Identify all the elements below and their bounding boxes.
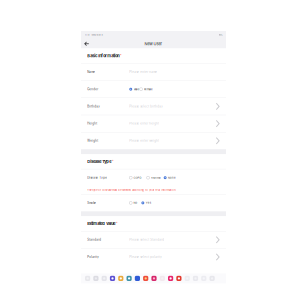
staticText: None — [168, 176, 176, 179]
button[interactable]: COPD — [129, 169, 147, 186]
staticText: Gender — [87, 87, 98, 91]
staticText: 11:01 Wed Nov 8 — [84, 34, 102, 36]
staticText: Yes — [146, 201, 151, 204]
staticText: Polarity — [87, 255, 99, 259]
staticText: Female — [144, 88, 153, 91]
staticText: * — [116, 222, 118, 226]
button[interactable]: Yes — [141, 194, 151, 211]
button[interactable]: Height — [81, 115, 226, 132]
staticText: Please select polarity — [129, 255, 162, 259]
staticText: New User — [144, 41, 162, 46]
button[interactable]: Polarity — [81, 249, 226, 265]
button[interactable]: Weight — [81, 132, 226, 149]
staticText: The type of disease must be selected acc… — [87, 189, 175, 192]
staticText: Please select birthday — [129, 105, 163, 108]
staticText: Please select Standard — [129, 238, 164, 241]
staticText: Basic Information — [87, 53, 119, 58]
staticText: Please enter height — [129, 122, 159, 125]
staticText: * — [112, 160, 114, 163]
button[interactable]: Male — [129, 81, 140, 98]
button[interactable]: Birthday — [81, 98, 226, 115]
staticText: Standard — [87, 238, 101, 241]
staticText: COPD — [134, 176, 142, 179]
staticText: Disease Type — [87, 159, 111, 164]
button[interactable]: Back — [81, 39, 95, 48]
staticText: Estimated value — [87, 221, 115, 226]
staticText: Asthma — [151, 176, 160, 179]
staticText: * — [120, 54, 122, 58]
staticText: Height — [87, 122, 97, 125]
staticText: 90% — [218, 34, 222, 36]
staticText: Smoke — [87, 201, 96, 205]
staticText: Please enter weight — [129, 139, 159, 142]
button[interactable]: No — [129, 194, 141, 211]
staticText: Disease Type — [87, 176, 107, 179]
staticText: Male — [134, 88, 140, 91]
button[interactable]: Asthma — [147, 169, 164, 186]
button[interactable]: Female — [140, 81, 153, 98]
staticText: Name — [87, 70, 95, 74]
staticText: No — [134, 201, 138, 204]
button[interactable]: Standard — [81, 231, 226, 248]
staticText: Birthday — [87, 105, 100, 108]
staticText: Weight — [87, 139, 98, 142]
staticText: Please enter name — [129, 70, 157, 74]
button[interactable]: None — [164, 169, 176, 186]
